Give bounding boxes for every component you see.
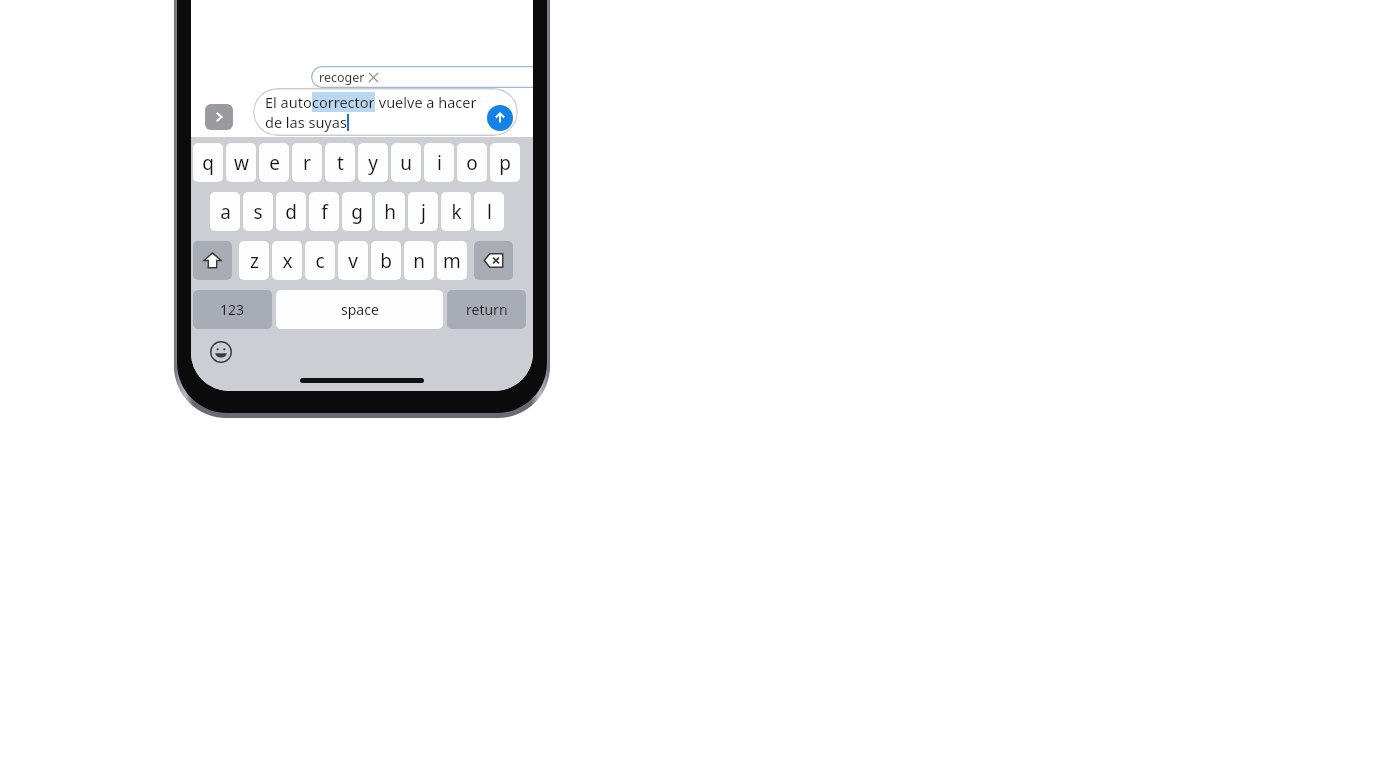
button[interactable]: q [193,143,223,182]
button[interactable]: Shift [193,241,232,280]
button[interactable]: v [338,241,368,280]
staticText: e [269,150,280,176]
staticText: x [282,248,293,274]
staticText: El auto [265,92,312,112]
button[interactable]: m [437,241,467,280]
staticText: t [337,150,344,176]
staticText: a [220,199,231,225]
button[interactable]: d [276,192,306,231]
button[interactable]: Apps [205,104,233,130]
button[interactable]: k [441,192,471,231]
staticText: d [285,199,297,225]
button[interactable]: El auto [253,88,518,136]
staticText: vuelve a hacer [375,92,477,112]
staticText: recoger [319,69,365,86]
button[interactable]: h [375,192,405,231]
button[interactable]: c [305,241,335,280]
staticText: f [321,199,328,225]
button[interactable]: l [474,192,504,231]
staticText: c [315,248,325,274]
staticText: l [487,199,492,225]
staticText: b [380,248,392,274]
staticText: y [368,150,378,176]
staticText: de las suyas [265,112,347,132]
button[interactable]: o [457,143,487,182]
button[interactable]: space [276,290,443,329]
staticText: q [202,150,214,176]
staticText: s [253,199,263,225]
staticText: u [400,150,412,176]
staticText: j [421,199,426,225]
staticText: z [250,248,259,274]
staticText: h [384,199,396,225]
button[interactable]: z [239,241,269,280]
staticText: g [351,199,363,225]
button[interactable]: r [292,143,322,182]
button[interactable]: Backspace [474,241,513,280]
staticText: p [499,150,511,176]
button[interactable]: y [358,143,388,182]
staticText: 123 [220,300,245,319]
button[interactable]: s [243,192,273,231]
staticText: n [413,248,425,274]
staticText: return [466,300,508,319]
button[interactable]: j [408,192,438,231]
button[interactable]: return [447,290,526,329]
staticText: i [437,150,442,176]
button[interactable]: u [391,143,421,182]
staticText: o [466,150,478,176]
staticText: r [303,150,311,176]
button[interactable]: f [309,192,339,231]
button[interactable]: 123 [193,290,272,329]
button[interactable]: g [342,192,372,231]
button[interactable]: recoger [311,66,533,88]
staticText: k [451,199,462,225]
button[interactable]: Emoji [209,340,233,364]
button[interactable]: p [490,143,520,182]
button[interactable]: w [226,143,256,182]
staticText: v [348,248,358,274]
staticText: space [341,300,379,319]
staticText: corrector [312,92,375,112]
staticText: m [443,248,461,274]
button[interactable]: b [371,241,401,280]
button[interactable]: a [210,192,240,231]
staticText: w [234,150,249,176]
button[interactable]: i [424,143,454,182]
button[interactable]: x [272,241,302,280]
button[interactable]: n [404,241,434,280]
button[interactable]: t [325,143,355,182]
button[interactable]: e [259,143,289,182]
button[interactable]: Send [487,105,513,131]
